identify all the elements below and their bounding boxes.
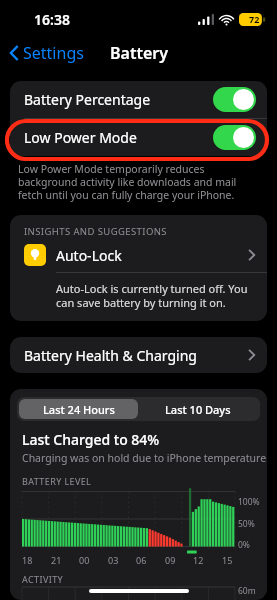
staticText: 16:38 xyxy=(34,10,70,29)
staticText: 00 xyxy=(79,554,90,566)
staticText: 03 xyxy=(108,554,119,566)
staticText: Low Power Mode temporarily reduces backg… xyxy=(18,162,259,202)
staticText: Battery Health & Charging xyxy=(24,346,197,365)
staticText: ACTIVITY xyxy=(22,573,64,585)
button[interactable]: Battery Percentage toggle xyxy=(213,87,256,112)
staticText: Battery xyxy=(110,42,168,64)
staticText: 72 xyxy=(249,13,260,25)
staticText: Battery Percentage xyxy=(24,90,151,109)
staticText: INSIGHTS AND SUGGESTIONS xyxy=(24,225,167,238)
staticText: 06 xyxy=(136,554,147,566)
staticText: 21 xyxy=(51,554,62,566)
staticText: 50% xyxy=(238,518,255,530)
button[interactable]: Last 10 Days xyxy=(138,399,258,419)
staticText: 60m xyxy=(238,585,256,597)
staticText: 15 xyxy=(222,554,233,566)
staticText: 0% xyxy=(238,539,250,551)
button[interactable]: Battery Health & Charging xyxy=(10,337,267,373)
staticText: Charging was on hold due to iPhone tempe… xyxy=(22,451,267,465)
staticText: 18 xyxy=(22,554,33,566)
button[interactable]: Auto-Lock xyxy=(10,238,267,272)
staticText: 100% xyxy=(238,496,260,508)
button[interactable]: Low Power Mode xyxy=(10,119,267,156)
button[interactable]: Battery Percentage xyxy=(10,81,267,118)
staticText: Auto-Lock is currently turned off. You c… xyxy=(56,281,251,310)
staticText: 09 xyxy=(165,554,176,566)
staticText: Last 10 Days xyxy=(165,402,231,417)
staticText: BATTERY LEVEL xyxy=(22,475,92,487)
staticText: Auto-Lock xyxy=(56,246,122,265)
staticText: 12 xyxy=(193,554,204,566)
button[interactable]: Settings xyxy=(6,38,88,68)
staticText: Last 24 Hours xyxy=(43,402,115,417)
staticText: Settings xyxy=(23,42,84,64)
button[interactable]: Last 24 Hours xyxy=(19,399,138,419)
button[interactable]: Low Power Mode toggle xyxy=(213,125,256,150)
other: More xyxy=(248,349,255,361)
staticText: Last Charged to 84% xyxy=(22,430,160,449)
staticText: Low Power Mode xyxy=(24,128,137,147)
other: More xyxy=(248,249,255,261)
